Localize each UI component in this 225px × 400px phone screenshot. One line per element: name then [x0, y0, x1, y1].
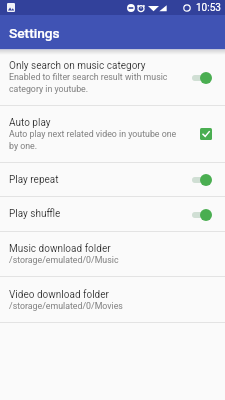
other: Auto play checkbox — [200, 128, 212, 140]
staticText: Play shuffle — [9, 208, 61, 220]
other: Play shuffle toggle — [192, 208, 212, 221]
staticText: /storage/emulated/0/Music — [9, 255, 119, 265]
button[interactable]: Only search on music category — [0, 49, 225, 105]
other: Play repeat toggle — [192, 173, 212, 186]
staticText: Music download folder — [9, 243, 111, 255]
button[interactable]: Music download folder — [0, 232, 225, 276]
staticText: /storage/emulated/0/Movies — [9, 301, 123, 311]
staticText: Only search on music category — [9, 60, 146, 72]
button[interactable]: Auto play — [0, 106, 225, 162]
button[interactable]: Play repeat — [0, 163, 225, 196]
staticText: Play repeat — [9, 174, 59, 186]
button[interactable]: Video download folder — [0, 277, 225, 322]
staticText: Auto play — [9, 117, 51, 129]
staticText: Video download folder — [9, 289, 109, 301]
other: Only search on music category toggle — [192, 71, 212, 84]
staticText: Auto play next related video in youtube … — [9, 129, 184, 151]
staticText: Settings — [9, 25, 60, 41]
button[interactable]: Play shuffle — [0, 197, 225, 231]
staticText: 10:53 — [196, 2, 221, 14]
staticText: Enabled to filter search result with mus… — [9, 72, 176, 94]
